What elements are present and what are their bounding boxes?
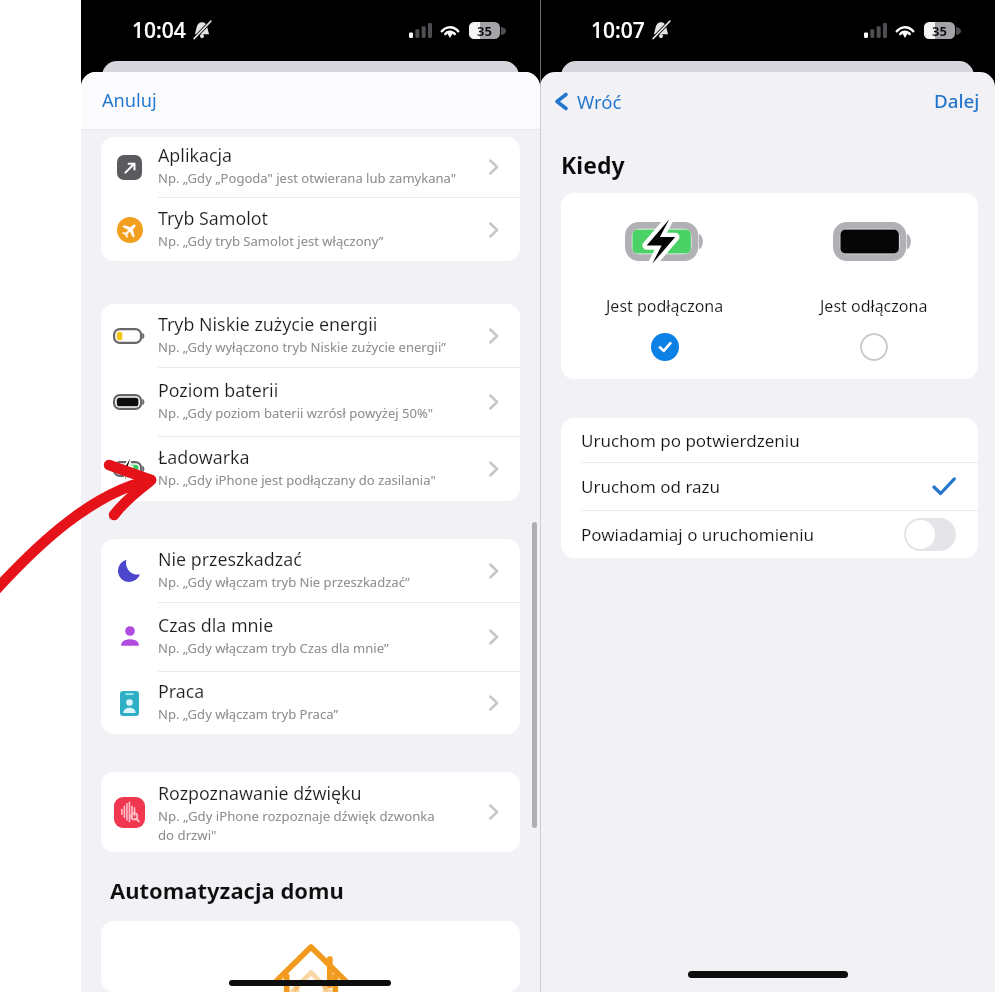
button[interactable]: Praca xyxy=(101,672,520,734)
staticText: 10:04 xyxy=(132,16,186,45)
button[interactable]: Powiadamiaj o uruchomieniu xyxy=(561,511,978,558)
button[interactable]: Dalej xyxy=(934,88,980,114)
staticText: Np. „Gdy włączam tryb Nie przeszkadzać” xyxy=(158,573,410,591)
button[interactable]: Tryb Samolot xyxy=(101,198,520,261)
staticText: Ładowarka xyxy=(158,445,250,469)
staticText: Uruchom po potwierdzeniu xyxy=(581,429,800,452)
staticText: Np. „Gdy wyłączono tryb Niskie zużycie e… xyxy=(158,338,447,356)
staticText: Rozpoznawanie dźwięku xyxy=(158,781,362,805)
button[interactable]: Ładowarka xyxy=(101,437,520,501)
staticText: Np. „Gdy iPhone rozpoznaje dźwięk dzwonk… xyxy=(158,807,435,844)
staticText: Nie przeszkadzać xyxy=(158,547,302,571)
staticText: Czas dla mnie xyxy=(158,613,274,637)
staticText: Aplikacja xyxy=(158,143,233,167)
button[interactable]: Uruchom po potwierdzeniu xyxy=(561,418,978,462)
staticText: Praca xyxy=(158,679,205,703)
staticText: 10:07 xyxy=(591,16,645,45)
button[interactable]: Jest podłączona xyxy=(561,193,769,379)
staticText: Np. „Gdy iPhone jest podłączany do zasil… xyxy=(158,471,436,489)
staticText: Automatyzacja domu xyxy=(110,875,344,905)
staticText: Uruchom od razu xyxy=(581,475,721,498)
staticText: Tryb Samolot xyxy=(158,206,268,230)
staticText: Anuluj xyxy=(102,88,157,113)
button[interactable]: Powiadamiaj o uruchomieniu xyxy=(904,518,956,551)
staticText: Powiadamiaj o uruchomieniu xyxy=(581,523,815,546)
button[interactable]: Aplikacja xyxy=(101,137,520,197)
button[interactable]: Uruchom od razu xyxy=(561,463,978,510)
staticText: Dalej xyxy=(934,88,980,114)
staticText: Np. „Gdy tryb Samolot jest włączony” xyxy=(158,232,384,250)
button[interactable]: Rozpoznawanie dźwięku xyxy=(101,772,520,852)
button[interactable]: Jest odłączona xyxy=(769,193,978,379)
button[interactable]: Poziom baterii xyxy=(101,368,520,436)
staticText: Poziom baterii xyxy=(158,378,279,402)
staticText: Np. „Gdy poziom baterii wzrósł powyżej 5… xyxy=(158,404,434,422)
button[interactable]: Tryb Niskie zużycie energii xyxy=(101,304,520,367)
staticText: Kiedy xyxy=(561,149,625,180)
staticText: 35 xyxy=(932,22,947,39)
button[interactable]: Wróć xyxy=(554,89,622,114)
button[interactable]: Anuluj xyxy=(102,88,157,113)
button[interactable]: Czas dla mnie xyxy=(101,603,520,671)
staticText: Np. „Gdy „Pogoda" jest otwierana lub zam… xyxy=(158,169,457,187)
staticText: Np. „Gdy włączam tryb Czas dla mnie” xyxy=(158,639,389,657)
staticText: 35 xyxy=(477,22,492,39)
staticText: Wróć xyxy=(577,89,622,114)
staticText: Jest podłączona xyxy=(606,295,724,317)
staticText: Np. „Gdy włączam tryb Praca” xyxy=(158,705,339,723)
button[interactable]: Nie przeszkadzać xyxy=(101,539,520,602)
staticText: Jest odłączona xyxy=(820,295,928,317)
staticText: Tryb Niskie zużycie energii xyxy=(158,312,378,336)
